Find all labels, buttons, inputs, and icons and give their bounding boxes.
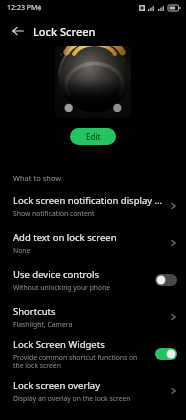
- button[interactable]: Use device controls: [0, 261, 186, 298]
- button[interactable]: Toggle off: [155, 274, 177, 286]
- button[interactable]: [55, 46, 131, 118]
- button[interactable]: Lock screen notification display Sett..: [0, 187, 186, 224]
- button[interactable]: Toggle on: [155, 348, 177, 360]
- button[interactable]: Lock screen overlay: [0, 372, 186, 409]
- staticText: Lock Screen: [33, 24, 96, 39]
- staticText: Display an overlay on the lock screen: [13, 394, 131, 403]
- staticText: What to show: [13, 173, 62, 183]
- staticText: Without unlocking your phone: [13, 283, 111, 292]
- button[interactable]: Edit: [70, 128, 116, 145]
- staticText: Shortcuts: [13, 305, 56, 318]
- staticText: Lock Screen Widgets: [13, 338, 105, 351]
- button[interactable]: Shortcuts: [0, 298, 186, 335]
- button[interactable]: Lock Screen Widgets: [0, 335, 186, 372]
- staticText: Flashlight, Camera: [13, 320, 73, 329]
- staticText: Lock screen overlay: [13, 379, 101, 392]
- staticText: 12:23 PM: [7, 3, 38, 13]
- staticText: Use device controls: [13, 268, 100, 281]
- staticText: Show notification content: [13, 209, 95, 218]
- staticText: None: [13, 246, 31, 255]
- staticText: Add text on lock screen: [13, 231, 117, 244]
- button[interactable]: Add text on lock screen: [0, 224, 186, 261]
- button[interactable]: Back: [8, 21, 28, 41]
- staticText: Lock screen notification display Sett..: [13, 194, 164, 207]
- staticText: Provide common shortcut functions on the…: [13, 353, 149, 370]
- staticText: Edit: [86, 131, 101, 142]
